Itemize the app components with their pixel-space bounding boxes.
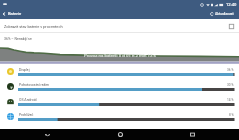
staticText: Aktualizovat [215, 12, 234, 16]
staticText: Zobrazit stav baterie v procentech [4, 24, 63, 29]
button[interactable]: Aktualizovat [207, 8, 239, 19]
staticText: 36 % [227, 68, 234, 72]
staticText: Displej [19, 68, 30, 72]
staticText: 8 % [229, 113, 234, 117]
staticText: Provoz na baterii: 0 d 01 h 2 min 13 s [84, 53, 156, 58]
button[interactable]: OS Android [0, 94, 239, 109]
button[interactable]: Prohlížeč [0, 109, 239, 124]
staticText: OS Android [19, 98, 37, 102]
button[interactable]: Zobrazit stav baterie v procentech [0, 19, 239, 33]
staticText: 30 % [227, 83, 234, 87]
staticText: Pohotovostní režim [19, 83, 50, 87]
staticText: 12:40 [226, 2, 237, 7]
button[interactable]: Home [94, 129, 146, 140]
staticText: 36% – Nenabíjí se [4, 37, 32, 41]
staticText: Prohlížeč [19, 113, 34, 117]
staticText: Baterie [8, 11, 22, 16]
button[interactable]: Baterie [0, 8, 26, 19]
button[interactable]: Pohotovostní režim [0, 79, 239, 94]
button[interactable]: Displej [0, 64, 239, 79]
staticText: 14 % [227, 98, 234, 102]
button[interactable]: Recent apps [166, 129, 218, 140]
button[interactable]: Back [21, 129, 73, 140]
